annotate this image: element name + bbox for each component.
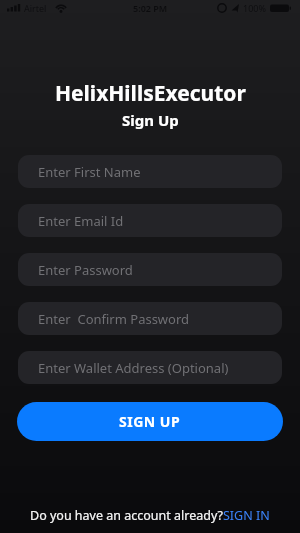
staticText: 5:02 PM [133,2,168,14]
button[interactable]: Enter Email Id [18,204,282,237]
staticText: Enter First Name [38,163,141,181]
staticText: SIGN UP [119,412,181,431]
staticText: Enter Wallet Address (Optional) [38,359,229,377]
staticText: SIGN IN [223,507,270,524]
staticText: 100% [243,2,266,14]
staticText: HelixHillsExecutor [55,79,246,108]
button[interactable]: SIGN UP [17,402,283,441]
button[interactable]: Enter Confirm Password [18,302,282,335]
staticText: Airtel [24,2,47,14]
staticText: Enter Email Id [38,212,124,230]
staticText: Enter Password [38,261,133,279]
staticText: Do you have an account already? [30,507,223,524]
button[interactable]: Enter Password [18,253,282,286]
staticText: Sign Up [122,110,179,130]
staticText: Enter Confirm Password [38,310,190,328]
button[interactable]: SIGN IN [223,507,270,524]
button[interactable]: Enter First Name [18,155,282,188]
button[interactable]: Enter Wallet Address (Optional) [18,351,282,384]
